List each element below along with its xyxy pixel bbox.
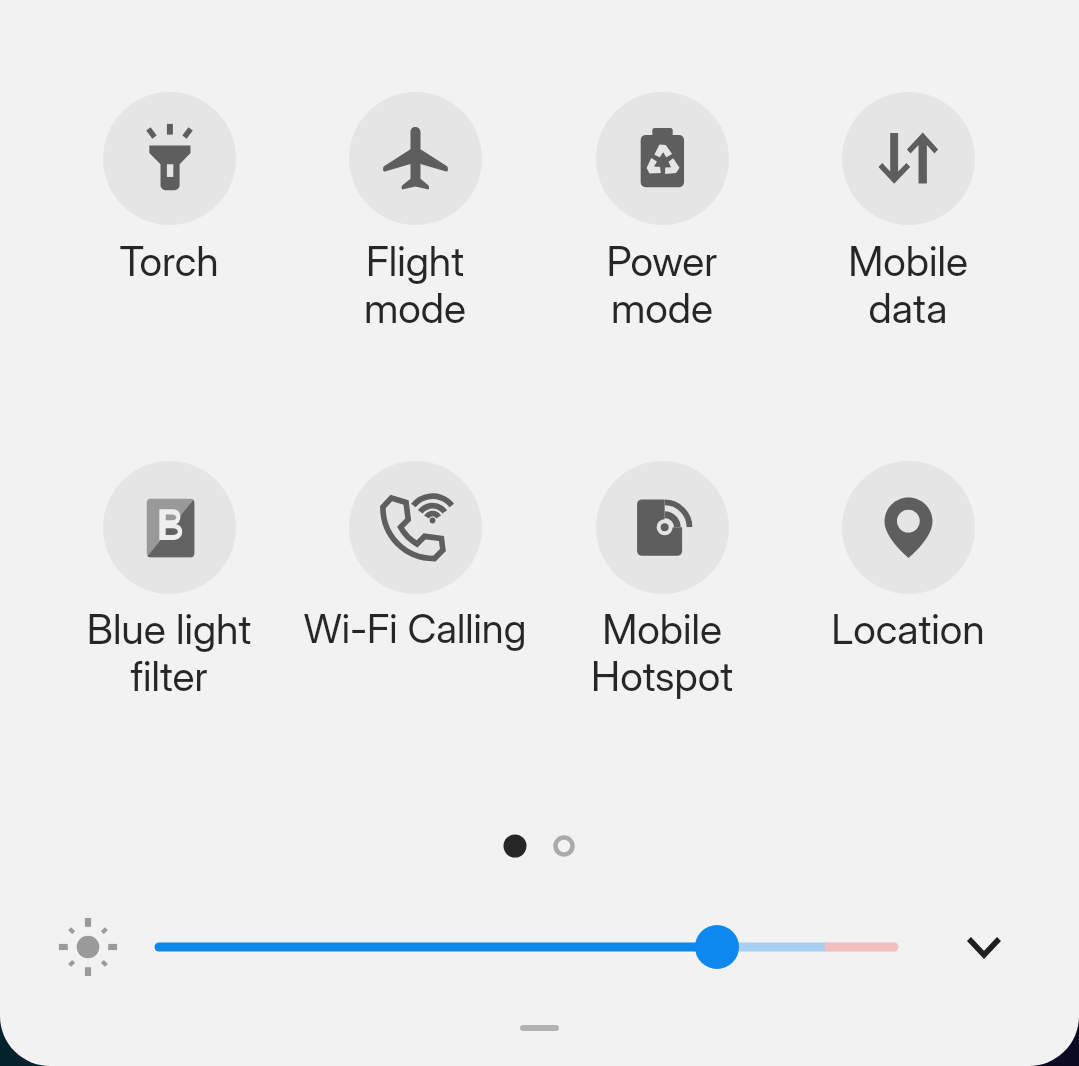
staticText: Torch — [19, 236, 319, 286]
button[interactable]: Torch — [19, 92, 319, 341]
button[interactable]: Page 2 — [544, 826, 584, 866]
button[interactable]: Wi-Fi Calling — [265, 461, 565, 709]
button[interactable]: Expand quick settings — [952, 915, 1016, 979]
staticText: Flight mode — [265, 236, 565, 333]
button[interactable]: Power mode — [512, 92, 812, 341]
staticText: Power mode — [512, 236, 812, 333]
button[interactable]: Blue light filter — [19, 461, 319, 709]
button[interactable]: Location — [758, 461, 1058, 709]
button[interactable]: Brightness — [54, 913, 122, 981]
staticText: Location — [758, 604, 1058, 654]
button[interactable]: Page 1, selected — [495, 826, 535, 866]
button[interactable]: Brightness slider — [140, 915, 915, 979]
button[interactable]: Mobile data — [758, 92, 1058, 341]
staticText: Wi-Fi Calling — [265, 604, 565, 652]
button[interactable]: Mobile Hotspot — [512, 461, 812, 709]
staticText: Mobile Hotspot — [512, 604, 812, 701]
staticText: Blue light filter — [19, 604, 319, 701]
button[interactable]: Flight mode — [265, 92, 565, 341]
staticText: Mobile data — [758, 236, 1058, 333]
